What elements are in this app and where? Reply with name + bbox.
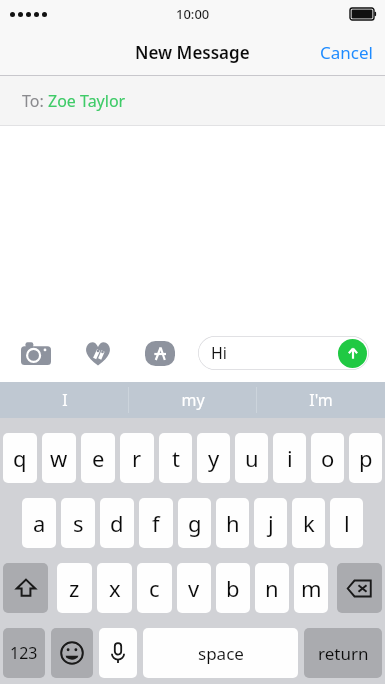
button[interactable]: Dictation [99, 628, 137, 678]
button[interactable]: Emoji [51, 628, 93, 678]
button[interactable]: Digital Touch [78, 333, 118, 373]
button[interactable]: Zoe Taylor [48, 90, 126, 112]
staticText: z [69, 573, 80, 603]
staticText: b [226, 573, 240, 603]
button[interactable]: App Store [140, 333, 180, 373]
button[interactable]: my [129, 382, 257, 418]
button[interactable]: v [177, 563, 211, 613]
staticText: a [33, 508, 46, 538]
button[interactable]: f [139, 498, 173, 548]
staticText: x [109, 573, 121, 603]
button[interactable]: l [330, 498, 363, 548]
button[interactable]: m [294, 563, 328, 613]
button[interactable]: d [100, 498, 134, 548]
button[interactable]: a [22, 498, 56, 548]
staticText: return [318, 642, 369, 665]
button[interactable]: Hi [198, 336, 369, 370]
button[interactable]: e [81, 433, 115, 483]
staticText: my [181, 389, 205, 411]
button[interactable]: 123 [3, 628, 45, 678]
button[interactable]: y [197, 433, 230, 483]
button[interactable]: k [292, 498, 325, 548]
staticText: s [73, 508, 84, 538]
staticText: I [62, 389, 68, 411]
staticText: p [359, 443, 373, 473]
staticText: w [50, 443, 68, 473]
button[interactable]: I [0, 382, 129, 418]
staticText: e [92, 443, 105, 473]
staticText: 123 [10, 642, 38, 664]
staticText: o [321, 443, 335, 473]
staticText: v [188, 573, 200, 603]
button[interactable]: o [311, 433, 344, 483]
staticText: m [301, 573, 322, 603]
staticText: g [188, 508, 202, 538]
button[interactable]: w [42, 433, 76, 483]
staticText: I'm [309, 389, 333, 411]
button[interactable]: b [216, 563, 250, 613]
button[interactable]: Camera [16, 333, 56, 373]
button[interactable]: Cancel [308, 31, 385, 74]
button[interactable]: Send [338, 339, 367, 368]
button[interactable]: u [235, 433, 268, 483]
staticText: f [152, 508, 160, 538]
staticText: Hi [211, 342, 227, 364]
staticText: q [13, 443, 27, 473]
button[interactable]: z [57, 563, 92, 613]
button[interactable]: c [137, 563, 172, 613]
staticText: space [198, 642, 244, 665]
button[interactable]: i [273, 433, 306, 483]
staticText: n [265, 573, 279, 603]
staticText: t [172, 443, 180, 473]
button[interactable]: x [97, 563, 132, 613]
button[interactable]: q [3, 433, 37, 483]
staticText: u [245, 443, 259, 473]
button[interactable]: s [61, 498, 95, 548]
button[interactable]: I'm [257, 382, 385, 418]
button[interactable]: space [143, 628, 298, 678]
button[interactable]: j [254, 498, 287, 548]
button[interactable]: Shift [3, 563, 48, 613]
staticText: r [132, 443, 142, 473]
button[interactable]: return [304, 628, 382, 678]
button[interactable]: Backspace [337, 563, 382, 613]
staticText: d [110, 508, 124, 538]
staticText: y [208, 443, 220, 473]
button[interactable]: n [255, 563, 289, 613]
staticText: l [344, 508, 350, 538]
button[interactable]: r [120, 433, 154, 483]
staticText: c [149, 573, 160, 603]
staticText: To: [22, 90, 48, 112]
staticText: h [226, 508, 240, 538]
staticText: j [268, 508, 274, 538]
button[interactable]: p [349, 433, 382, 483]
staticText: k [303, 508, 315, 538]
staticText: Cancel [320, 41, 373, 64]
staticText: 10:00 [176, 5, 210, 23]
staticText: New Message [135, 41, 250, 64]
button[interactable]: t [159, 433, 192, 483]
button[interactable]: h [216, 498, 249, 548]
staticText: i [287, 443, 293, 473]
button[interactable]: g [178, 498, 211, 548]
